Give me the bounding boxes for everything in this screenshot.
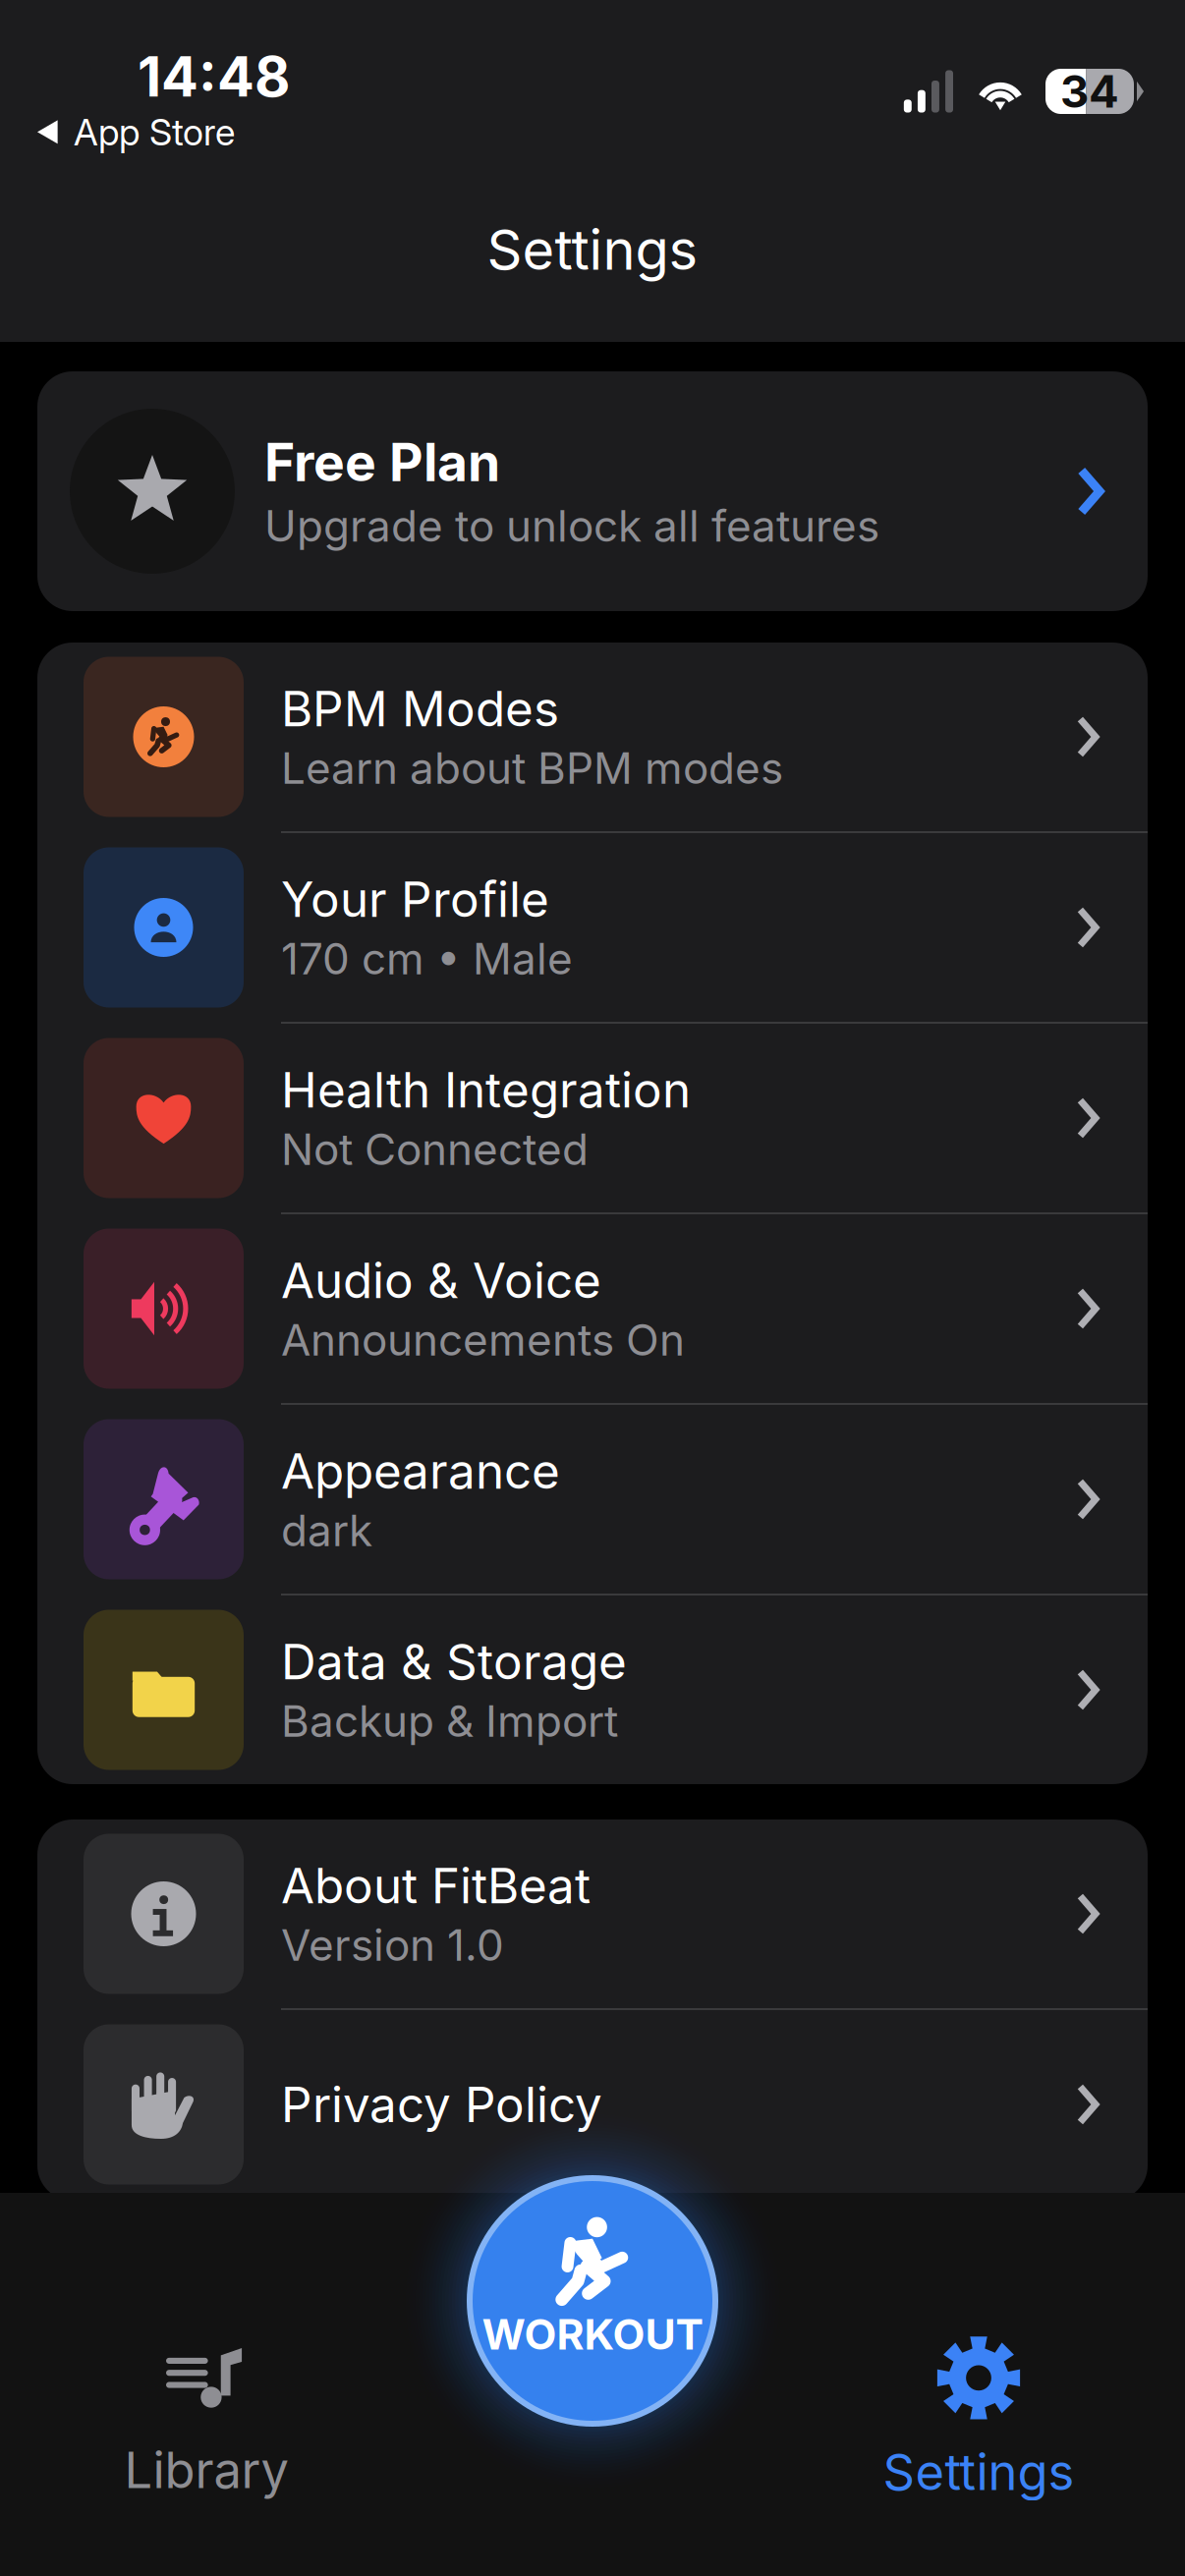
button[interactable]: Health Integration xyxy=(37,1024,1148,1212)
staticText: 170 cm • Male xyxy=(281,933,573,985)
staticText: Library xyxy=(124,2440,288,2500)
button[interactable]: WORKOUT xyxy=(386,2095,799,2507)
staticText: 14:48 xyxy=(138,43,290,110)
button[interactable]: Library xyxy=(0,2296,413,2542)
button[interactable]: Free Plan xyxy=(0,342,1185,611)
staticText: About FitBeat xyxy=(281,1856,591,1915)
staticText: Privacy Policy xyxy=(281,2075,602,2134)
staticText: Not Connected xyxy=(281,1123,589,1175)
staticText: Upgrade to unlock all features xyxy=(264,500,879,552)
button[interactable]: Your Profile xyxy=(37,833,1148,1022)
button[interactable]: Audio & Voice xyxy=(37,1214,1148,1403)
button[interactable]: Settings xyxy=(772,2296,1185,2542)
staticText: Settings xyxy=(883,2442,1074,2502)
staticText: WORKOUT xyxy=(482,2309,703,2360)
staticText: Announcements On xyxy=(281,1314,685,1366)
staticText: 34 xyxy=(1060,64,1119,118)
staticText: Your Profile xyxy=(281,870,549,929)
staticText: Backup & Import xyxy=(281,1695,618,1747)
button[interactable]: Appearance xyxy=(37,1405,1148,1594)
staticText: Appearance xyxy=(281,1442,560,1500)
staticText: BPM Modes xyxy=(281,679,559,738)
button[interactable]: BPM Modes xyxy=(37,643,1148,831)
staticText: Data & Storage xyxy=(281,1632,627,1691)
button[interactable]: Data & Storage xyxy=(37,1596,1148,1784)
staticText: Settings xyxy=(487,216,698,283)
staticText: dark xyxy=(281,1504,372,1557)
staticText: Health Integration xyxy=(281,1061,691,1119)
staticText: Learn about BPM modes xyxy=(281,742,783,794)
staticText: Free Plan xyxy=(264,430,500,494)
staticText: App Store xyxy=(74,110,235,154)
button[interactable]: About FitBeat xyxy=(37,1820,1148,2008)
staticText: Audio & Voice xyxy=(281,1251,601,1310)
staticText: Version 1.0 xyxy=(281,1919,504,1971)
button[interactable]: Privacy Policy xyxy=(37,2010,1148,2199)
